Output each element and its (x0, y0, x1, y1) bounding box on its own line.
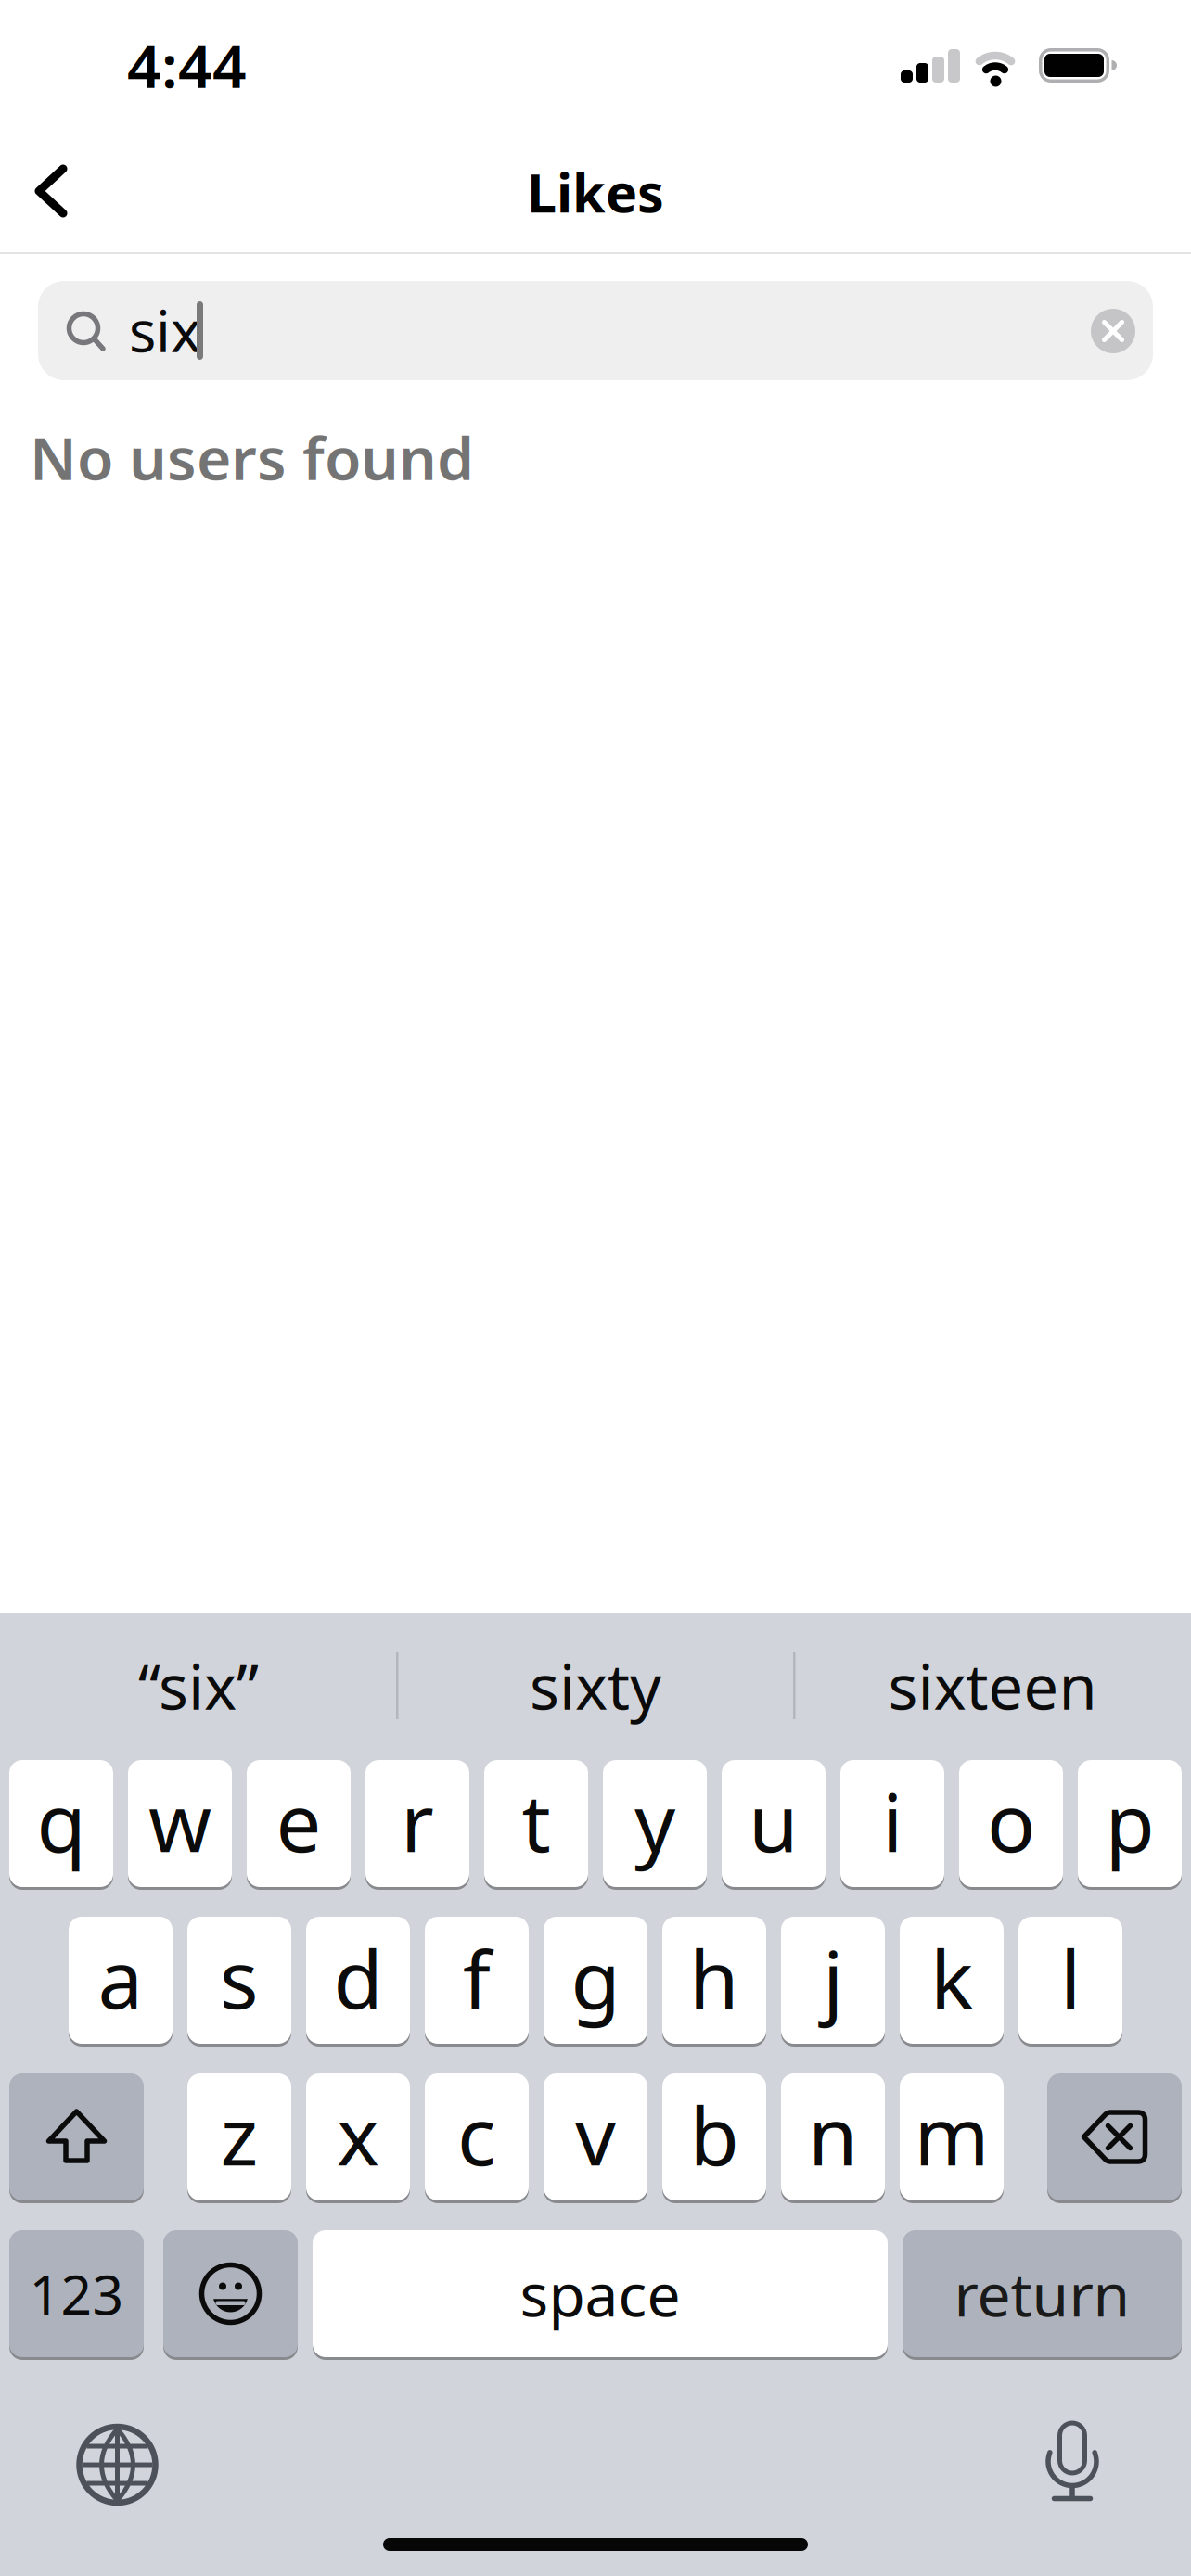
staticText: f (463, 1924, 491, 2031)
staticText: No users found (30, 418, 474, 497)
button[interactable]: z (187, 2073, 291, 2200)
button[interactable]: Numbers (9, 2230, 144, 2357)
button[interactable]: Emoji (163, 2230, 298, 2357)
staticText: Likes (527, 157, 664, 227)
staticText: j (823, 1924, 843, 2031)
button[interactable]: Back (0, 0, 1191, 2576)
button[interactable]: r (365, 1760, 469, 1887)
staticText: m (914, 2081, 989, 2188)
button[interactable]: f (425, 1917, 529, 2044)
staticText: r (401, 1767, 434, 1874)
button[interactable]: j (781, 1917, 885, 2044)
button[interactable]: y (603, 1760, 707, 1887)
button[interactable]: return (903, 2230, 1182, 2357)
staticText: space (520, 2254, 680, 2333)
staticText: z (220, 2081, 258, 2188)
button[interactable]: i (840, 1760, 944, 1887)
button[interactable]: e (247, 1760, 351, 1887)
button[interactable]: u (722, 1760, 826, 1887)
staticText: k (930, 1924, 973, 2031)
staticText: sixty (530, 1645, 661, 1727)
staticText: 123 (29, 2257, 124, 2330)
staticText: v (575, 2081, 616, 2188)
staticText: i (882, 1767, 903, 1874)
staticText: “six” (138, 1645, 259, 1727)
staticText: g (571, 1924, 620, 2031)
button[interactable]: a (69, 1917, 173, 2044)
button[interactable]: l (1018, 1917, 1122, 2044)
button[interactable]: sixty (399, 1630, 792, 1741)
staticText: b (690, 2081, 739, 2188)
button[interactable]: p (1078, 1760, 1182, 1887)
staticText: x (337, 2081, 379, 2188)
staticText: return (954, 2254, 1130, 2333)
staticText: w (148, 1767, 211, 1874)
button[interactable]: c (425, 2073, 529, 2200)
button[interactable]: s (187, 1917, 291, 2044)
button[interactable]: k (900, 1917, 1004, 2044)
staticText: o (987, 1767, 1035, 1874)
staticText: a (98, 1924, 143, 2031)
button[interactable]: sixteen (796, 1630, 1189, 1741)
button[interactable]: x (306, 2073, 410, 2200)
button[interactable]: n (781, 2073, 885, 2200)
button[interactable]: g (544, 1917, 647, 2044)
button[interactable]: “six” (2, 1630, 395, 1741)
button[interactable]: o (959, 1760, 1063, 1887)
staticText: l (1060, 1924, 1081, 2031)
button[interactable]: h (662, 1917, 766, 2044)
staticText: n (808, 2081, 858, 2188)
staticText: e (276, 1767, 321, 1874)
button[interactable]: d (306, 1917, 410, 2044)
staticText: s (220, 1924, 259, 2031)
staticText: p (1105, 1767, 1154, 1874)
button[interactable]: w (128, 1760, 232, 1887)
staticText: 4:44 (127, 26, 247, 104)
button[interactable]: m (900, 2073, 1004, 2200)
button[interactable]: Shift (9, 2073, 144, 2200)
button[interactable]: b (662, 2073, 766, 2200)
button[interactable]: Clear search text (1091, 309, 1135, 353)
button[interactable]: v (544, 2073, 647, 2200)
button[interactable]: Next keyboard (79, 2427, 155, 2503)
staticText: y (634, 1767, 675, 1874)
button[interactable]: Dictation (1047, 2423, 1097, 2501)
button[interactable]: Delete (1047, 2073, 1182, 2200)
staticText: u (749, 1767, 799, 1874)
staticText: d (333, 1924, 383, 2031)
button[interactable]: space (313, 2230, 888, 2357)
staticText: sixteen (888, 1645, 1097, 1727)
button[interactable]: t (484, 1760, 588, 1887)
button[interactable]: q (9, 1760, 113, 1887)
staticText: c (457, 2081, 496, 2188)
staticText: six (129, 292, 200, 368)
staticText: t (522, 1767, 551, 1874)
staticText: q (37, 1767, 86, 1874)
staticText: h (689, 1924, 739, 2031)
